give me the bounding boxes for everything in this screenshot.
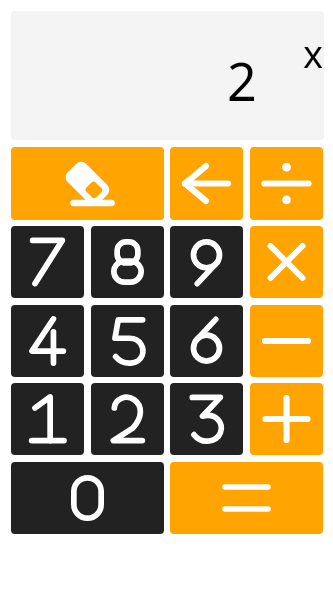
button[interactable]: Equals — [170, 462, 323, 534]
button[interactable]: 6 — [170, 305, 243, 377]
button[interactable]: 3 — [170, 383, 243, 455]
button[interactable]: 4 — [11, 305, 84, 377]
staticText: x — [303, 27, 324, 79]
button[interactable]: 5 — [91, 305, 164, 377]
button[interactable]: Subtract — [250, 305, 323, 377]
button[interactable]: Clear — [11, 147, 164, 220]
button[interactable]: 9 — [170, 226, 243, 298]
button[interactable]: Backspace — [170, 147, 243, 220]
button[interactable]: Divide — [250, 147, 323, 220]
button[interactable]: 1 — [11, 383, 84, 455]
button[interactable]: 7 — [11, 226, 84, 298]
button[interactable]: Multiply — [250, 226, 323, 298]
button[interactable]: Add — [250, 383, 323, 455]
staticText: 2 — [227, 45, 257, 116]
button[interactable]: 8 — [91, 226, 164, 298]
button[interactable]: 2 — [91, 383, 164, 455]
button[interactable]: 0 — [11, 462, 164, 534]
